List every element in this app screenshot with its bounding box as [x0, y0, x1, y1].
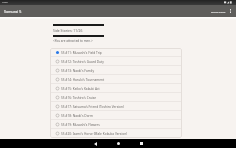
- staticText: SS #11: Musashi's Field Trip: [61, 51, 102, 55]
- staticText: 12:29: [2, 1, 8, 4]
- staticText: SHOW STATS: [211, 10, 226, 13]
- staticText: Samurai 5: [4, 9, 22, 14]
- staticText: SS #13: Naoki's Family: [61, 69, 95, 73]
- button[interactable]: SS #17: Satsuma's Friend (Toshiro Versio…: [50, 102, 182, 111]
- button[interactable]: SS #14: Haruki's Tournament: [50, 75, 182, 84]
- button[interactable]: SS #16: Toshiro's Cruise: [50, 93, 182, 102]
- button[interactable]: More options: [225, 5, 236, 17]
- button[interactable]: Back: [84, 139, 107, 148]
- button[interactable]: SS #15: Keiko's Kabuki Act: [50, 84, 182, 93]
- button[interactable]: SS #19: Musashi's Flowers: [50, 120, 182, 129]
- button[interactable]: SS #12: Toshiro's Guard Duty: [50, 57, 182, 66]
- staticText: SS #18: Naoki's Dorm: [61, 114, 93, 118]
- staticText: SS #17: Satsuma's Friend (Toshiro Versio…: [61, 105, 124, 109]
- staticText: SS #12: Toshiro's Guard Duty: [61, 60, 104, 64]
- button[interactable]: SS #13: Naoki's Family: [50, 66, 182, 75]
- button[interactable]: SS #11: Musashi's Field Trip: [50, 48, 182, 57]
- staticText: SS #14: Haruki's Tournament: [61, 78, 105, 82]
- button[interactable]: SS #20: Isami's Horse (Male Kobuka Versi…: [50, 129, 182, 138]
- staticText: Side Stories: 11/26: [53, 28, 83, 33]
- button[interactable]: SS #18: Naoki's Dorm: [50, 111, 182, 120]
- staticText: SS #15: Keiko's Kabuki Act: [61, 87, 100, 91]
- staticText: SS #16: Toshiro's Cruise: [61, 96, 97, 100]
- staticText: SS #19: Musashi's Flowers: [61, 123, 100, 127]
- button[interactable]: SHOW STATS: [208, 8, 227, 15]
- button[interactable]: Home: [107, 139, 130, 148]
- staticText: SS #20: Isami's Horse (Male Kobuka Versi…: [61, 132, 128, 136]
- button[interactable]: Recent apps: [130, 139, 153, 148]
- staticText: <You are attracted to men.>: [53, 39, 93, 43]
